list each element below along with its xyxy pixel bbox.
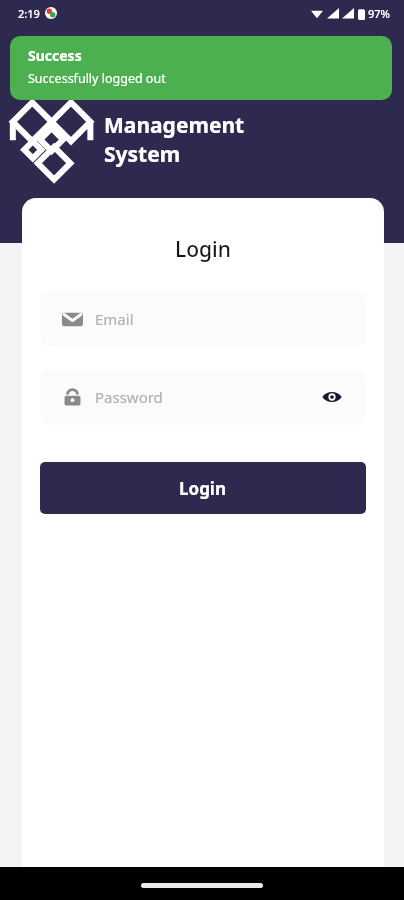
staticText: 97% (368, 6, 390, 21)
button[interactable]: Login (40, 462, 366, 514)
staticText: Password (95, 387, 318, 407)
staticText: Login (179, 477, 227, 500)
staticText: Login (175, 235, 231, 264)
staticText: Management (104, 111, 245, 140)
button[interactable]: Email (40, 291, 366, 347)
staticText: 2:19 (18, 6, 40, 21)
button[interactable]: Success (10, 36, 392, 100)
button[interactable]: Password (40, 369, 366, 425)
button[interactable]: Show password (318, 383, 346, 411)
staticText: Success (28, 46, 82, 65)
staticText: Email (95, 309, 346, 329)
staticText: Successfully logged out (28, 70, 166, 87)
staticText: System (104, 140, 181, 169)
